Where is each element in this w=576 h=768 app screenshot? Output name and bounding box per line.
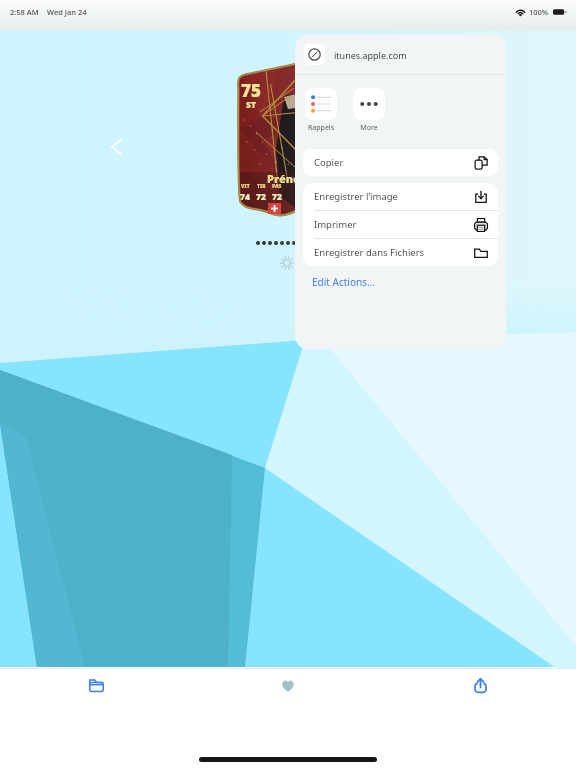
button[interactable]: Enregistrer l’image [303,183,498,210]
staticText: ST [246,99,256,111]
button[interactable]: Bookmarks [0,668,192,703]
staticText: Rappels [308,123,334,133]
staticText: Edit Actions... [312,275,375,289]
staticText: Enregistrer l’image [314,190,398,203]
staticText: 72 [272,191,282,203]
staticText: PAS [272,183,282,190]
staticText: VIT [241,183,250,190]
staticText: Préno [267,171,301,186]
staticText: 75 [241,79,261,102]
staticText: 100% [529,7,549,17]
staticText: Enregistrer dans Fichiers [314,246,425,259]
staticText: More [360,123,378,133]
staticText: 72 [256,191,266,203]
button[interactable]: Favorites [192,668,384,703]
button[interactable]: Rappels [304,88,338,133]
staticText: Imprimer [314,218,357,231]
staticText: 74 [240,191,250,203]
staticText: itunes.apple.com [334,49,407,61]
staticText: Copier [314,156,344,169]
button[interactable]: More [352,88,386,133]
button[interactable]: Enregistrer dans Fichiers [303,239,498,266]
button[interactable]: Share [384,668,576,703]
button[interactable]: Copier [303,149,498,176]
staticText: 2:58 AM [10,7,39,17]
button[interactable]: Edit Actions... [295,270,506,294]
button[interactable]: Imprimer [303,211,498,238]
button[interactable]: itunes.apple.com [295,35,506,74]
staticText: Wed Jan 24 [47,7,87,17]
staticText: TIR [257,183,266,190]
